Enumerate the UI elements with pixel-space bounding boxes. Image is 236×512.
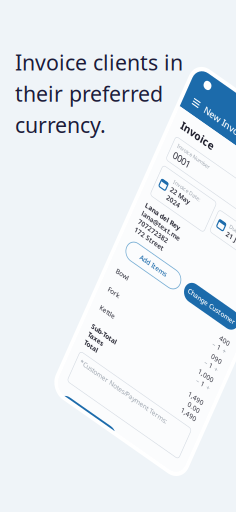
staticText: Kettle — [209, 317, 227, 326]
staticText: *Customer Notes/Payment Terms: — [213, 374, 236, 383]
staticText: Sub-Total — [209, 338, 236, 347]
staticText: Invoice clients in — [15, 48, 183, 76]
staticText: Taxes — [209, 347, 227, 355]
staticText: 707272382 — [209, 223, 236, 232]
staticText: lana@text.me — [209, 214, 236, 223]
staticText: Invoice Date: — [225, 171, 236, 178]
staticText: 172 Street — [209, 232, 236, 241]
staticText: Fork — [209, 297, 223, 306]
staticText: Invoice Number — [214, 138, 236, 145]
staticText: Total — [209, 355, 225, 364]
staticText: their preferred — [15, 79, 163, 108]
staticText: Lana del Rey — [209, 205, 236, 214]
staticText: Invoice — [209, 115, 236, 129]
staticText: currency. — [15, 111, 106, 139]
staticText: New Invoice — [224, 90, 236, 102]
